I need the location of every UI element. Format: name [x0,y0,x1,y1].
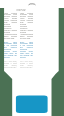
staticText: Aqua Sorbitol Hydrated Silica Glycerin S… [4,12,17,40]
staticText: Use a soft brush, replace it every three… [4,60,17,68]
staticText: Use a soft brush, replace it every three… [20,60,33,68]
staticText: Aqua Sorbitol Hydrated Silica Glycerin S… [20,12,33,40]
staticText: Brush teeth thoroughly twice a day morni… [20,41,33,59]
staticText: Brush teeth thoroughly twice a day morni… [4,41,17,59]
staticText: TOOTHPASTE FAMILY CARE [14,8,28,12]
